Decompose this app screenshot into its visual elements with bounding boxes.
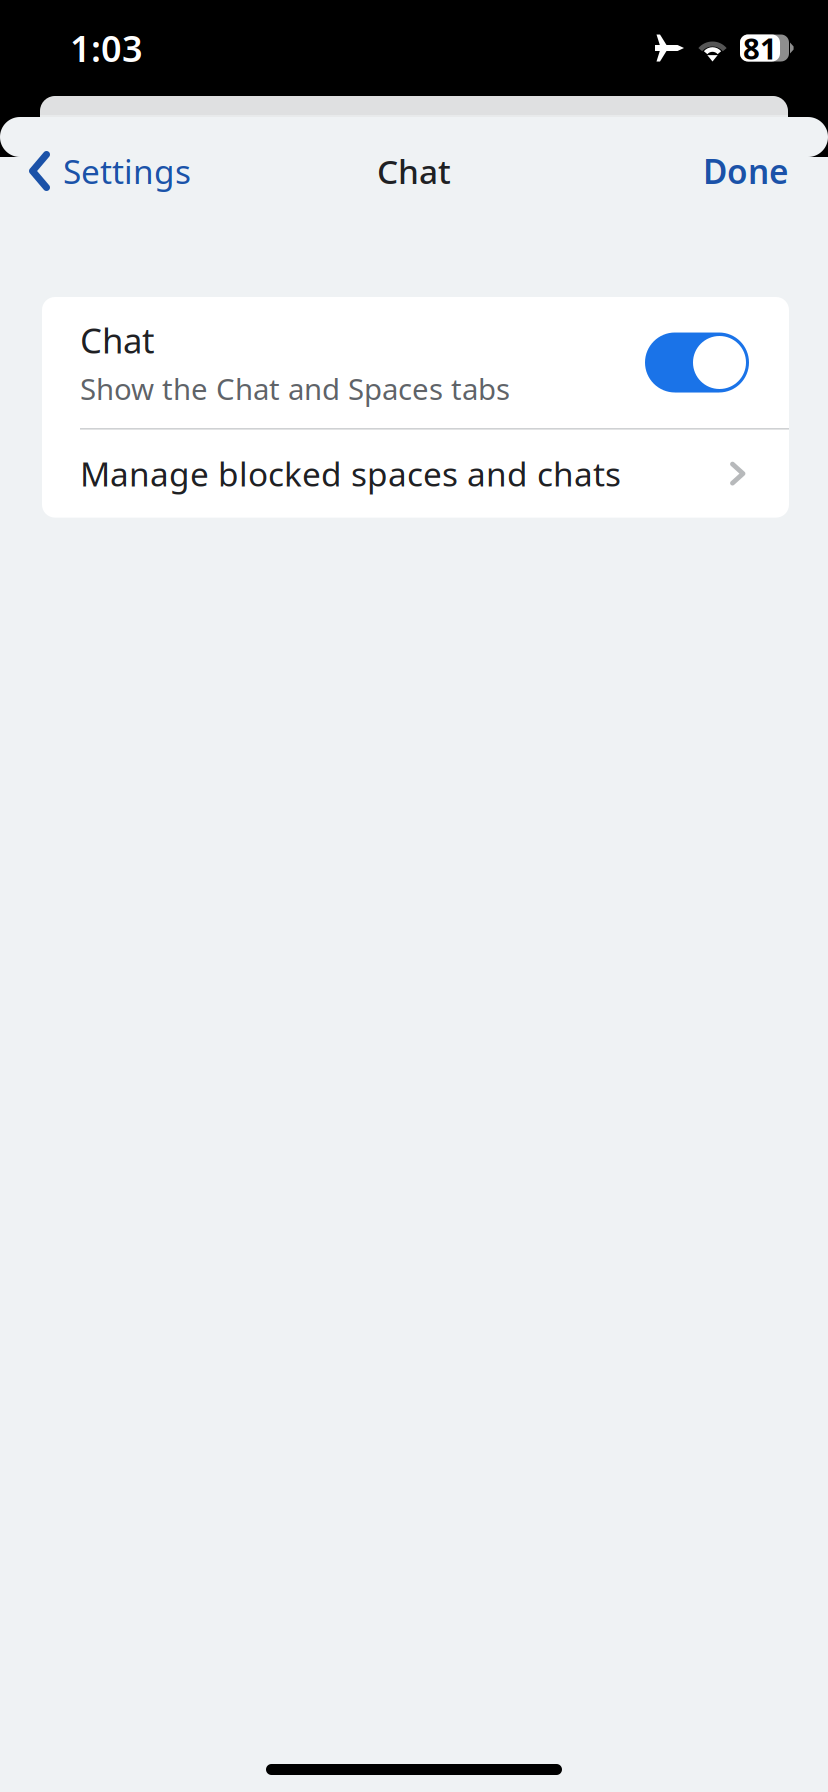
- button[interactable]: Done: [703, 137, 828, 205]
- button[interactable]: Chat: [42, 297, 789, 428]
- staticText: Settings: [63, 149, 191, 193]
- staticText: Chat: [80, 317, 155, 363]
- button[interactable]: Settings: [0, 137, 191, 205]
- staticText: Chat: [377, 149, 451, 193]
- staticText: 81: [743, 28, 777, 67]
- staticText: Show the Chat and Spaces tabs: [80, 369, 510, 408]
- staticText: 1:03: [70, 24, 143, 72]
- staticText: Done: [703, 149, 789, 193]
- button[interactable]: Manage blocked spaces and chats: [42, 430, 789, 518]
- staticText: Manage blocked spaces and chats: [80, 451, 621, 496]
